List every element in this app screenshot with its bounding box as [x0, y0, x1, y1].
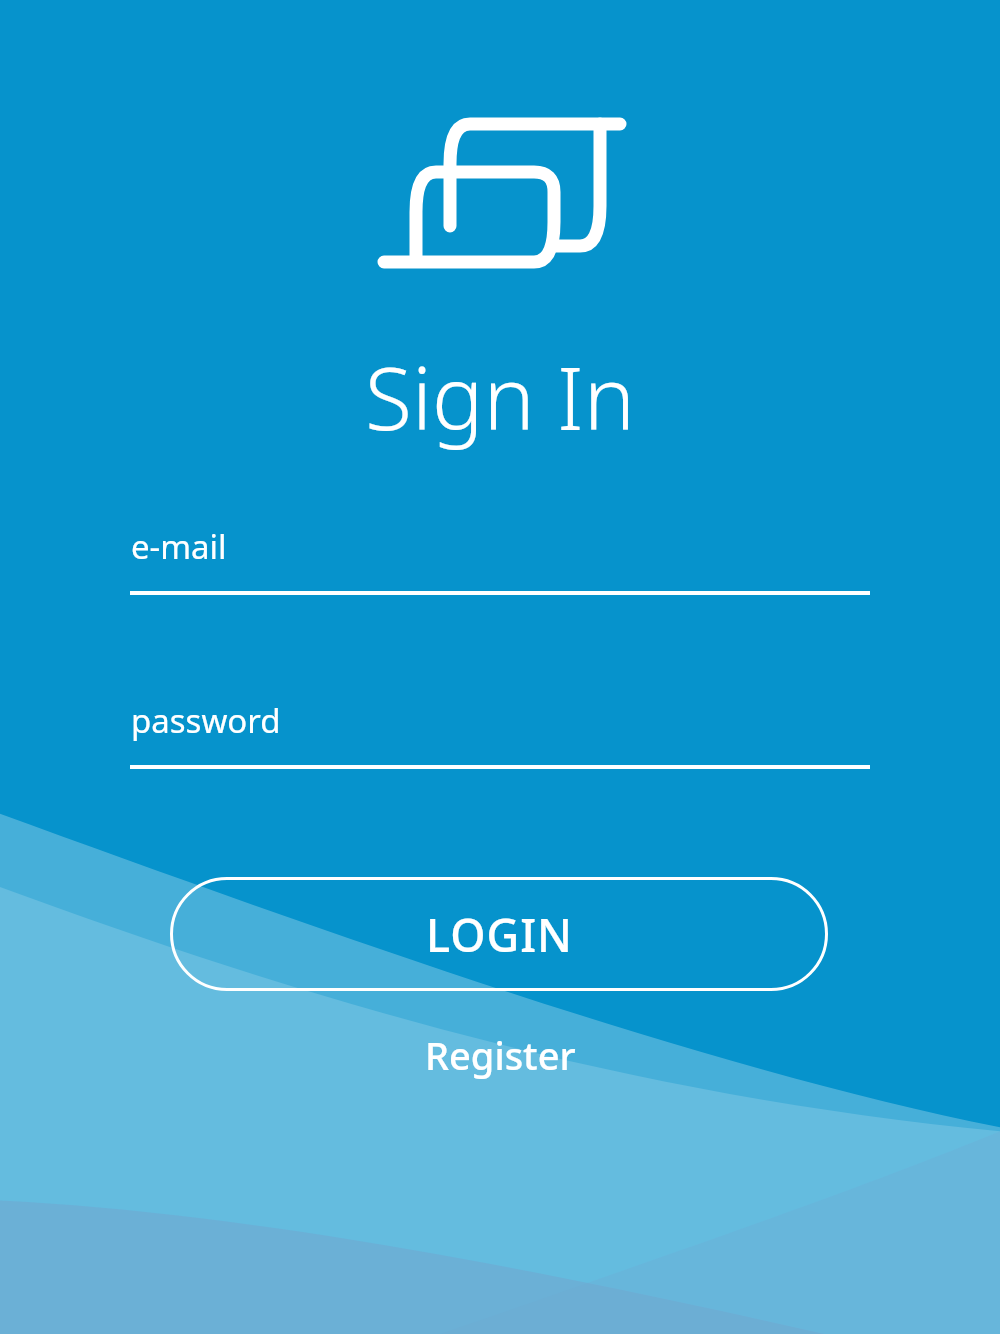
- button[interactable]: [130, 520, 870, 596]
- button[interactable]: LOGIN: [170, 877, 828, 991]
- staticText: Register: [425, 1029, 576, 1081]
- button[interactable]: Register: [390, 1024, 610, 1086]
- staticText: Sign In: [365, 338, 635, 455]
- button[interactable]: [130, 694, 870, 770]
- staticText: e-mail: [131, 524, 227, 569]
- staticText: password: [131, 698, 281, 743]
- other: App logo: [378, 116, 626, 272]
- staticText: LOGIN: [426, 904, 573, 965]
